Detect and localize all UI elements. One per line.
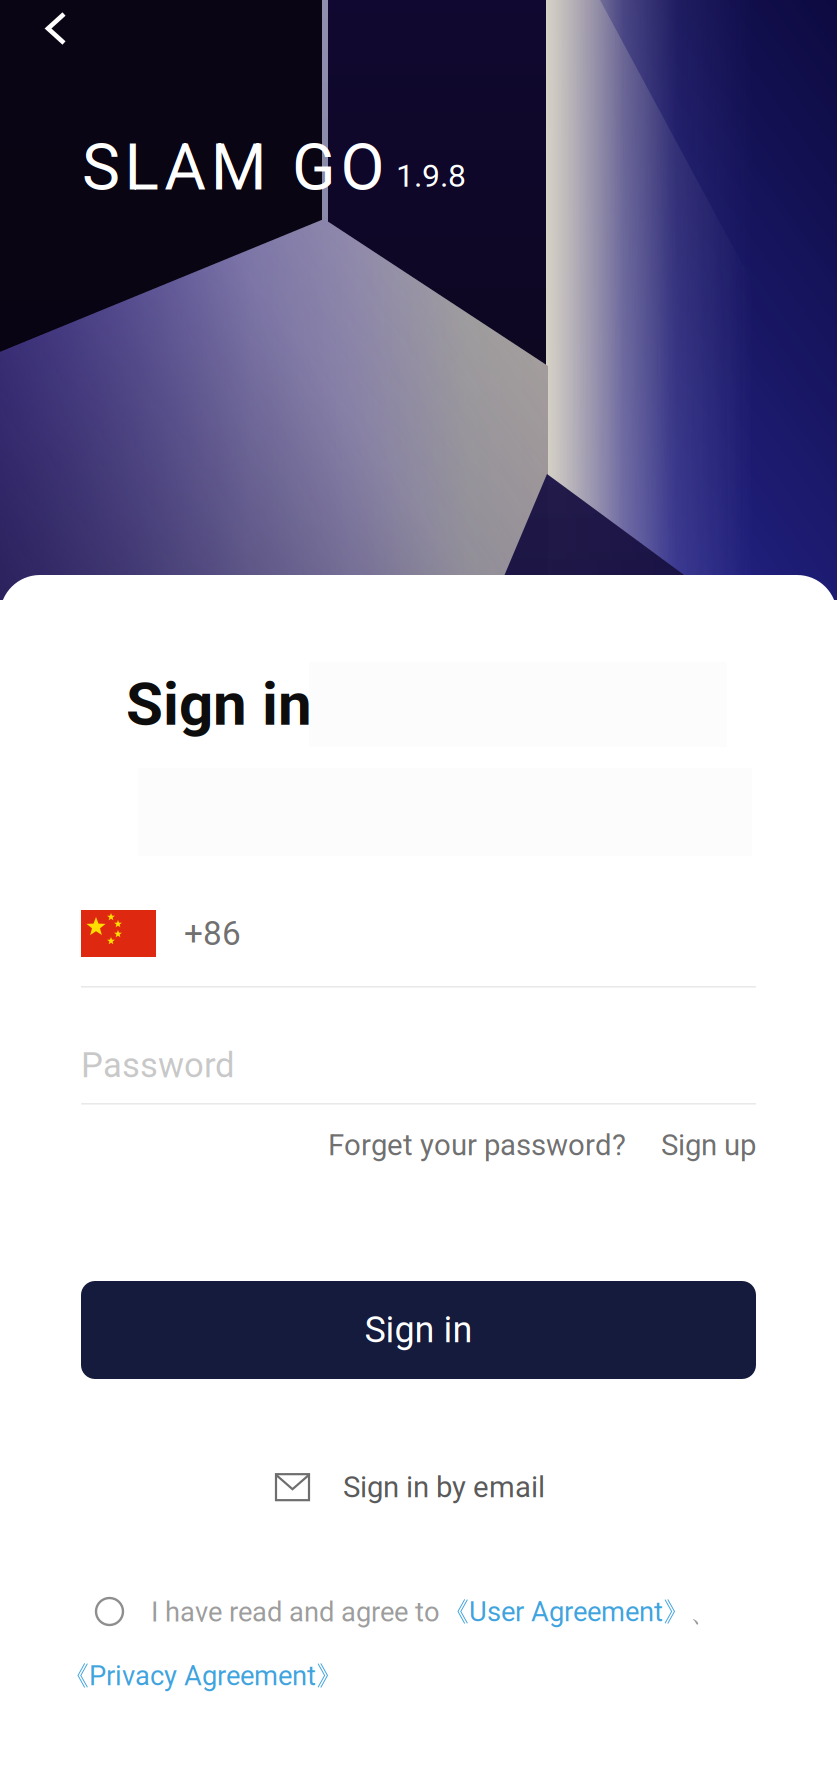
staticText: Sign in by email: [343, 1470, 545, 1504]
staticText: Sign in: [126, 669, 312, 739]
button[interactable]: Sign up: [661, 1128, 756, 1162]
button[interactable]: 《User Agreement》: [442, 1595, 690, 1629]
staticText: SLAM GO: [82, 130, 385, 205]
staticText: Forget your password?: [328, 1128, 626, 1162]
staticText: Sign up: [661, 1128, 756, 1162]
button[interactable]: Sign in: [81, 1281, 756, 1379]
staticText: Password: [81, 1045, 235, 1086]
button[interactable]: Forget your password?: [328, 1128, 626, 1162]
staticText: 《User Agreement》: [442, 1595, 690, 1629]
button[interactable]: 《Privacy Agreement》: [62, 1659, 343, 1693]
button[interactable]: Sign in by email: [276, 1470, 545, 1504]
staticText: 《Privacy Agreement》: [62, 1659, 343, 1693]
staticText: 1.9.8: [396, 157, 466, 194]
button[interactable]: Agree to terms: [96, 1598, 123, 1625]
staticText: Sign in: [364, 1309, 472, 1351]
staticText: I have read and agree to: [151, 1596, 440, 1628]
button[interactable]: Back: [26, 0, 86, 65]
staticText: 、: [690, 1595, 717, 1629]
staticText: +86: [184, 914, 241, 953]
